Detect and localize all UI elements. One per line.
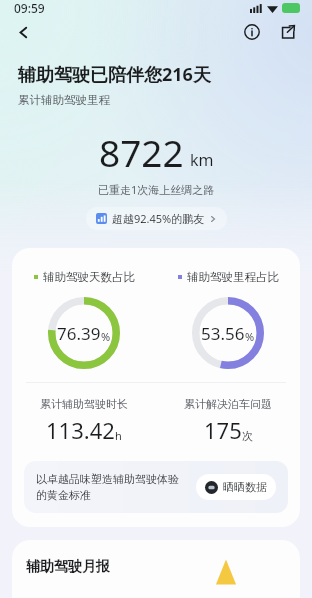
staticText: 晒晒数据 bbox=[223, 480, 267, 494]
staticText: % bbox=[245, 329, 255, 344]
staticText: % bbox=[101, 329, 111, 344]
staticText: 累计辅助驾驶时长 bbox=[40, 397, 128, 411]
staticText: 53.56 bbox=[201, 322, 245, 345]
staticText: 次 bbox=[242, 429, 253, 443]
staticText: 76.39 bbox=[57, 322, 101, 345]
staticText: 已重走1次海上丝绸之路 bbox=[98, 182, 215, 197]
staticText: km bbox=[190, 149, 214, 171]
staticText: 175 bbox=[204, 415, 242, 445]
staticText: 8722 bbox=[99, 127, 184, 177]
staticText: 辅助驾驶已陪伴您216天 bbox=[18, 62, 211, 87]
button[interactable]: 超越92.45%的鹏友 bbox=[86, 207, 227, 230]
staticText: 以卓越品味塑造辅助驾驶体验 的黄金标准 bbox=[36, 472, 188, 502]
button[interactable]: Share bbox=[272, 16, 304, 48]
staticText: 超越92.45%的鹏友 bbox=[112, 211, 205, 226]
button[interactable]: Back bbox=[6, 16, 40, 48]
button[interactable]: 晒晒数据 bbox=[196, 474, 276, 500]
staticText: 113.42 bbox=[46, 415, 115, 445]
button[interactable]: Info bbox=[236, 16, 268, 48]
staticText: h bbox=[115, 428, 122, 443]
staticText: 累计解决泊车问题 bbox=[184, 397, 272, 411]
staticText: 辅助驾驶天数占比 bbox=[43, 270, 135, 284]
staticText: 辅助驾驶月报 bbox=[26, 558, 110, 576]
staticText: 累计辅助驾驶里程 bbox=[18, 93, 110, 107]
staticText: 辅助驾驶里程占比 bbox=[187, 270, 279, 284]
staticText: 09:59 bbox=[14, 0, 45, 16]
